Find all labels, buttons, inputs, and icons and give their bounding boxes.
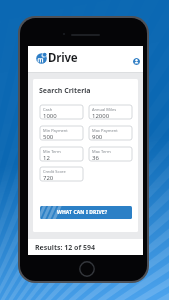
staticText: Results: 12 of 594 (35, 243, 96, 253)
button[interactable]: Min Term (40, 147, 83, 161)
staticText: 720 (43, 174, 54, 182)
staticText: Cash (43, 107, 53, 112)
staticText: Max Term (92, 149, 111, 154)
button[interactable]: Credit Score (40, 167, 83, 181)
staticText: Annual Miles (92, 107, 117, 112)
button[interactable]: Annual Miles (89, 105, 132, 119)
button[interactable]: Account (133, 58, 140, 65)
button[interactable]: Min Payment (40, 126, 83, 140)
staticText: Max Payment (92, 128, 118, 133)
button[interactable]: Max Payment (89, 126, 132, 140)
staticText: 12 (43, 154, 50, 162)
button[interactable]: WHAT CAN I DRIVE? (40, 206, 132, 219)
staticText: Search Criteria (39, 86, 91, 96)
staticText: 36 (92, 154, 99, 162)
staticText: WHAT CAN I DRIVE? (57, 209, 108, 216)
button[interactable]: Drive (36, 50, 78, 66)
button[interactable]: Cash (40, 105, 83, 119)
button[interactable]: Max Term (89, 147, 132, 161)
staticText: 500 (43, 133, 54, 141)
staticText: Min Payment (43, 128, 68, 133)
staticText: 1000 (43, 112, 57, 120)
staticText: Credit Score (43, 169, 66, 174)
staticText: Drive (48, 50, 78, 66)
staticText: 12000 (92, 112, 110, 120)
staticText: Min Term (43, 149, 61, 154)
staticText: 900 (92, 133, 103, 141)
